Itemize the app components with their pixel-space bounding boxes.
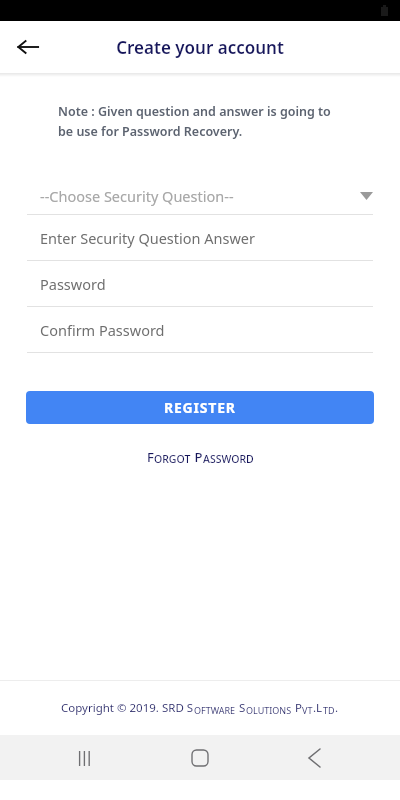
staticText: ASSWORD <box>203 452 254 466</box>
staticText: Password <box>40 274 106 294</box>
button[interactable]: REGISTER <box>26 391 374 424</box>
button[interactable]: Recent apps <box>68 740 104 776</box>
button[interactable]: Home <box>180 738 220 778</box>
staticText: --Choose Security Question-- <box>40 186 234 206</box>
button[interactable]: Enter Security Question Answer <box>0 215 400 261</box>
button[interactable]: Password <box>0 261 400 307</box>
staticText: P <box>191 448 203 466</box>
staticText: Create your account <box>116 36 284 59</box>
staticText: P <box>292 700 302 716</box>
staticText: S <box>236 700 246 716</box>
button[interactable]: --Choose Security Question-- <box>0 178 400 215</box>
staticText: SRD S <box>162 700 194 716</box>
staticText: REGISTER <box>164 398 236 417</box>
staticText: Confirm Password <box>40 320 165 340</box>
staticText: OFTWARE <box>194 704 236 716</box>
button[interactable]: Confirm Password <box>0 307 400 353</box>
staticText: Copyright © 2019. <box>61 700 162 716</box>
button[interactable]: Back <box>10 29 46 65</box>
button[interactable]: Back <box>296 740 332 776</box>
staticText: .L <box>313 700 323 716</box>
staticText: Enter Security Question Answer <box>40 228 256 248</box>
staticText: Note : Given question and answer is goin… <box>58 103 331 120</box>
staticText: ORGOT <box>154 452 191 466</box>
staticText: . <box>335 700 339 716</box>
staticText: be use for Password Recovery. <box>58 123 243 140</box>
staticText: TD <box>323 704 335 716</box>
staticText: F <box>147 448 154 466</box>
button[interactable]: F <box>0 448 400 466</box>
staticText: VT <box>302 704 313 716</box>
staticText: OLUTIONS <box>246 704 292 716</box>
